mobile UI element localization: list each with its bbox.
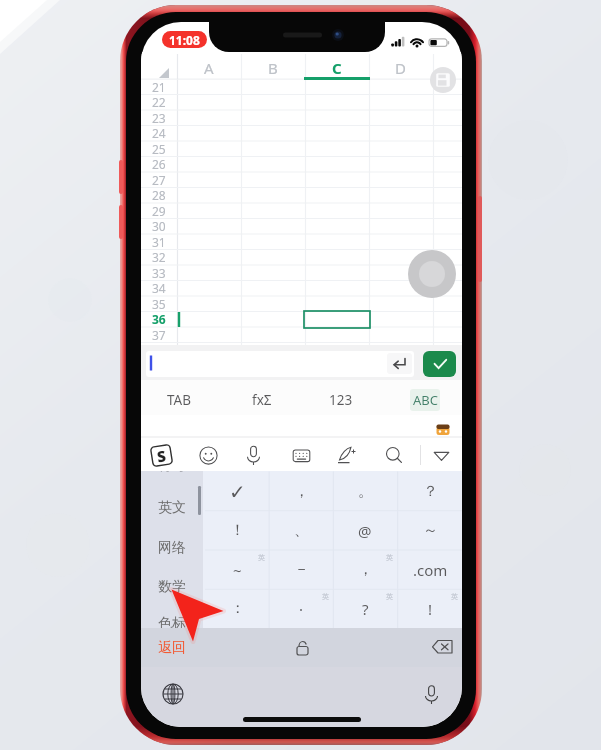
staticText: 返回: [158, 639, 186, 657]
staticText: 37: [152, 327, 166, 343]
staticText: 36: [152, 311, 166, 327]
staticText: 数学: [158, 578, 186, 596]
staticText: B: [268, 58, 278, 78]
button[interactable]: ✓: [205, 472, 269, 511]
staticText: ！: [230, 521, 245, 540]
button[interactable]: Search: [382, 443, 407, 468]
staticText: B: [268, 61, 278, 81]
button[interactable]: A: [189, 57, 229, 79]
staticText: !: [428, 599, 433, 619]
staticText: 27: [152, 172, 166, 188]
staticText: ·: [299, 599, 304, 619]
button[interactable]: ，: [333, 550, 397, 589]
staticText: @: [358, 521, 372, 541]
button[interactable]: C: [317, 58, 357, 84]
staticText: 33: [152, 265, 166, 281]
button[interactable]: Formula input: [146, 351, 414, 377]
button[interactable]: ABC: [387, 380, 462, 420]
button[interactable]: Handwriting: [334, 443, 359, 468]
staticText: 11:08: [169, 32, 200, 48]
staticText: 32: [152, 249, 166, 265]
button[interactable]: Voice input: [241, 443, 266, 468]
staticText: 英: [386, 592, 393, 601]
staticText: ?: [362, 599, 369, 619]
button[interactable]: Save: [430, 67, 456, 93]
staticText: ？: [423, 482, 438, 501]
button[interactable]: ？: [398, 472, 462, 511]
button[interactable]: .com: [398, 550, 462, 589]
button[interactable]: Confirm: [423, 351, 456, 377]
staticText: 22: [152, 94, 166, 110]
staticText: fxΣ: [252, 391, 272, 409]
button[interactable]: ！: [205, 511, 269, 550]
button[interactable]: 英文: [141, 494, 203, 522]
staticText: ～: [423, 521, 438, 540]
button[interactable]: New line: [387, 353, 412, 374]
staticText: 、: [294, 521, 309, 540]
button[interactable]: Input method settings: [149, 443, 174, 468]
button[interactable]: 123: [303, 380, 379, 420]
button[interactable]: Emoji: [196, 443, 221, 468]
staticText: 26: [152, 156, 166, 172]
staticText: C: [332, 61, 342, 81]
staticText: ，: [358, 560, 373, 579]
staticText: ✓: [229, 480, 246, 503]
staticText: 24: [152, 125, 166, 141]
button[interactable]: ，: [269, 472, 333, 511]
staticText: 29: [152, 203, 166, 219]
button[interactable]: Keyboard layout: [289, 443, 314, 468]
button[interactable]: 数学: [141, 573, 203, 601]
staticText: ，: [294, 482, 309, 501]
staticText: 英: [451, 592, 458, 601]
staticText: ：: [230, 599, 245, 618]
button[interactable]: ~: [205, 550, 269, 589]
button[interactable]: TAB: [141, 380, 217, 420]
button[interactable]: fxΣ: [224, 380, 300, 420]
button[interactable]: D: [380, 58, 420, 84]
button[interactable]: 。: [333, 472, 397, 511]
button[interactable]: －: [269, 550, 333, 589]
staticText: 英: [258, 553, 265, 562]
button[interactable]: Lock symbol keyboard: [272, 634, 332, 660]
button[interactable]: D: [380, 57, 420, 79]
button[interactable]: 符号: [141, 471, 203, 480]
button[interactable]: ～: [398, 511, 462, 550]
button[interactable]: !: [398, 589, 462, 628]
button[interactable]: C: [317, 57, 357, 79]
staticText: 英: [322, 592, 329, 601]
button[interactable]: ·: [269, 589, 333, 628]
button[interactable]: 色标: [141, 610, 203, 638]
button[interactable]: Hide keyboard: [429, 443, 454, 468]
button[interactable]: Recording indicator 11:08: [162, 31, 207, 48]
staticText: A: [204, 61, 214, 81]
staticText: S: [156, 445, 168, 467]
button[interactable]: @: [333, 511, 397, 550]
button[interactable]: 返回: [141, 628, 203, 667]
button[interactable]: A: [189, 58, 229, 84]
button[interactable]: Zoom handle: [408, 250, 456, 298]
staticText: 21: [152, 79, 166, 95]
button[interactable]: 网络: [141, 534, 203, 562]
staticText: A: [204, 58, 214, 78]
staticText: D: [395, 58, 406, 78]
staticText: TAB: [167, 391, 191, 409]
button[interactable]: Switch language: [160, 681, 186, 707]
staticText: 28: [152, 187, 166, 203]
button[interactable]: Voice typing: [418, 681, 444, 707]
staticText: .com: [413, 560, 448, 580]
staticText: 网络: [158, 539, 186, 557]
staticText: 34: [152, 280, 166, 296]
staticText: D: [395, 61, 406, 81]
staticText: －: [294, 560, 309, 579]
button[interactable]: 、: [269, 511, 333, 550]
button[interactable]: ?: [333, 589, 397, 628]
button[interactable]: B: [253, 58, 293, 84]
button[interactable]: B: [253, 57, 293, 79]
button[interactable]: ：: [205, 589, 269, 628]
staticText: 英文: [158, 499, 186, 517]
button[interactable]: Backspace: [422, 634, 462, 660]
staticText: 123: [329, 391, 353, 409]
staticText: ABC: [413, 391, 438, 409]
staticText: 23: [152, 110, 166, 126]
staticText: 31: [152, 234, 166, 250]
